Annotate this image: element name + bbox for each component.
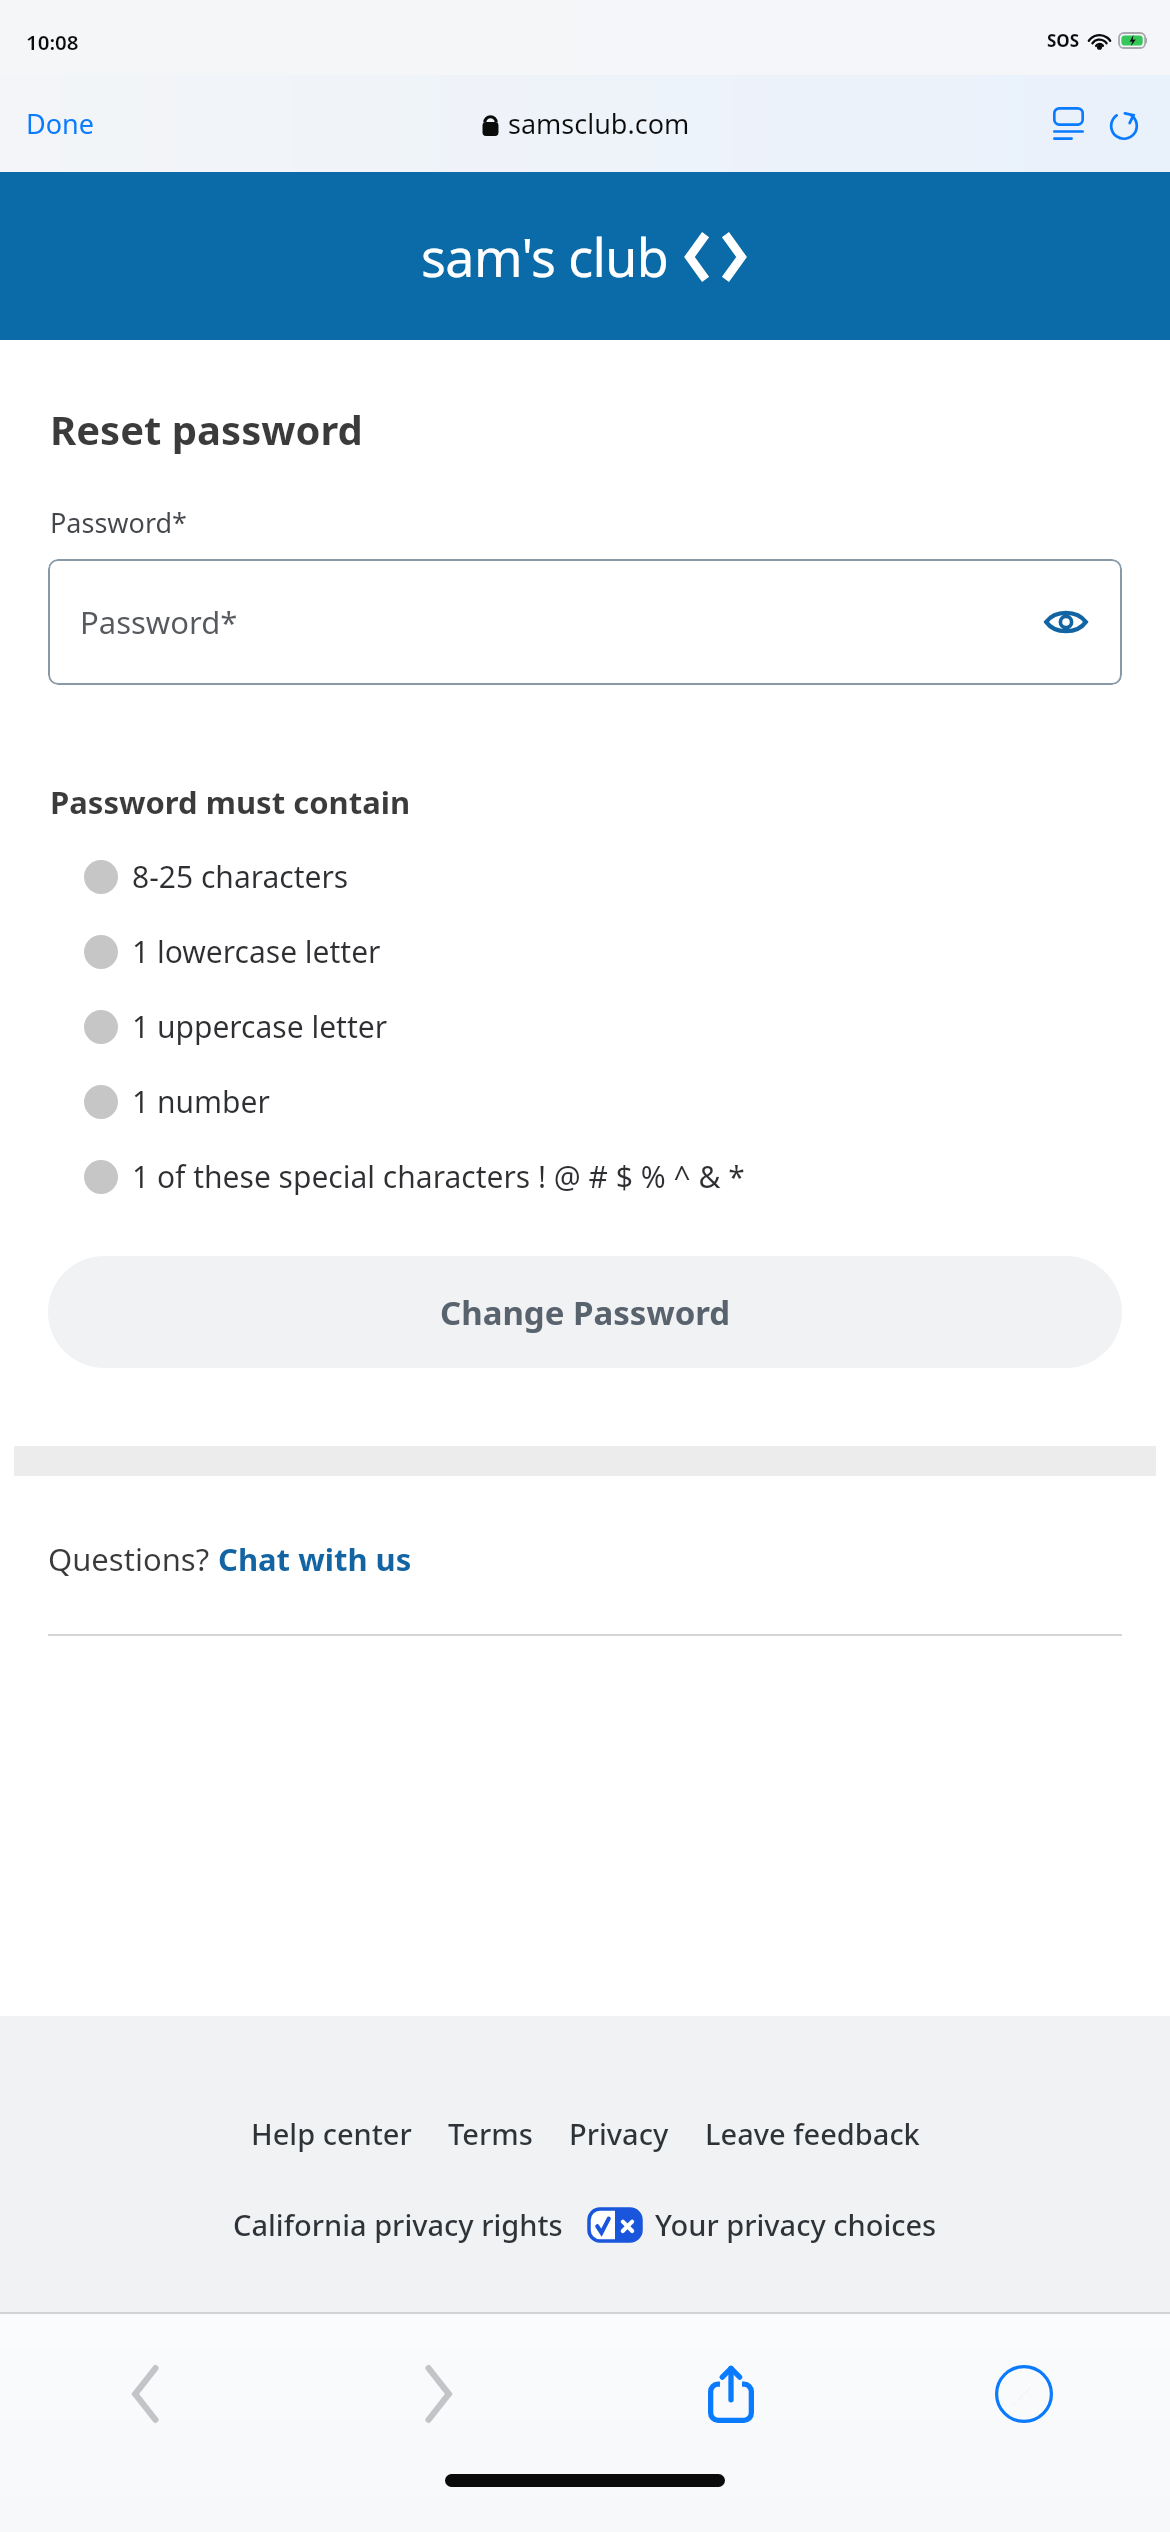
staticText: samsclub.com [508, 105, 690, 142]
button[interactable]: Bookmarks [877, 2314, 1170, 2474]
button[interactable]: Chat with us [218, 1538, 412, 1580]
button[interactable]: Terms [446, 2108, 535, 2159]
button[interactable]: Privacy [567, 2108, 671, 2159]
staticText: Chat with us [218, 1538, 412, 1580]
button[interactable]: California privacy rights [233, 2199, 563, 2250]
button[interactable]: Show password [1034, 598, 1098, 646]
staticText: 8-25 characters [132, 856, 349, 897]
staticText: Terms [448, 2114, 533, 2153]
staticText: Leave feedback [705, 2114, 920, 2153]
staticText: Change Password [440, 1290, 731, 1335]
button[interactable]: Help center [249, 2108, 414, 2159]
button[interactable]: Reload [1096, 96, 1152, 152]
staticText: 1 uppercase letter [132, 1006, 388, 1047]
staticText: Questions? [48, 1538, 218, 1580]
button[interactable]: Share [584, 2314, 877, 2474]
staticText: Password* [50, 504, 187, 541]
staticText: 1 of these special characters ! @ # $ % … [132, 1156, 745, 1197]
staticText: Help center [251, 2114, 412, 2153]
staticText: 1 number [132, 1081, 270, 1122]
staticText: Done [26, 105, 94, 142]
button[interactable]: Done [0, 91, 120, 156]
staticText: sam's club [421, 221, 669, 292]
staticText: California privacy rights [233, 2205, 563, 2244]
staticText: Password* [80, 601, 238, 643]
button[interactable]: Forward [292, 2314, 584, 2474]
staticText: 10:08 [26, 28, 79, 56]
staticText: Password must contain [50, 781, 411, 823]
button[interactable]: Back [0, 2314, 292, 2474]
staticText: Privacy [569, 2114, 669, 2153]
staticText: Your privacy choices [655, 2205, 937, 2244]
staticText: 1 lowercase letter [132, 931, 381, 972]
button[interactable]: Leave feedback [703, 2108, 922, 2159]
button[interactable]: Your privacy choices [589, 2199, 937, 2250]
staticText: Reset password [50, 402, 363, 456]
staticText: SOS [1047, 29, 1080, 52]
button[interactable]: Reader view [1041, 95, 1096, 153]
button[interactable]: Password* [48, 559, 1122, 685]
button[interactable]: Change Password [48, 1256, 1122, 1368]
button[interactable]: samsclub.com [475, 99, 696, 148]
